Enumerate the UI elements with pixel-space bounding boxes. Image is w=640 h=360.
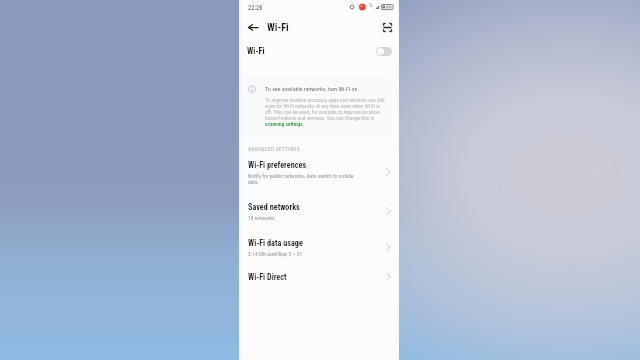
button[interactable]: Back	[245, 19, 261, 35]
button[interactable]: Scan QR code to add network	[380, 20, 395, 35]
staticText: Wi-Fi	[267, 21, 289, 33]
staticText: 22:26	[248, 4, 263, 12]
button[interactable]: Wi-Fi Direct	[239, 269, 399, 285]
staticText: Wi-Fi Direct	[248, 272, 287, 282]
staticText: To see available networks, turn Wi-Fi on…	[265, 85, 359, 92]
staticText: 2.14 GB used May 3 – 31	[248, 251, 363, 257]
staticText: Notify for public networks, Auto switch …	[248, 173, 363, 185]
button[interactable]: Saved networks	[239, 197, 399, 225]
button[interactable]: Wi-Fi preferences	[239, 157, 399, 187]
staticText: ADVANCED SETTINGS	[248, 146, 300, 152]
staticText: Wi-Fi data usage	[248, 238, 303, 248]
staticText: To improve location accuracy, apps and s…	[265, 97, 385, 127]
staticText: Wi-Fi	[247, 46, 265, 56]
button[interactable]: Wi-Fi	[239, 40, 399, 62]
button[interactable]: Wi-Fi data usage	[239, 233, 399, 261]
staticText: Saved networks	[248, 202, 300, 212]
staticText: Wi-Fi preferences	[248, 160, 307, 170]
staticText: %	[369, 2, 373, 9]
staticText: 18 networks	[248, 215, 363, 221]
